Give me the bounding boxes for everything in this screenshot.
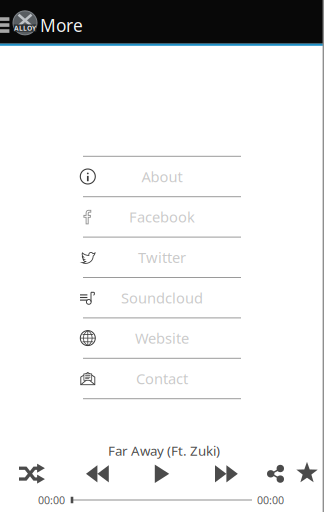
staticText: Twitter (138, 248, 186, 267)
staticText: About (141, 167, 182, 186)
button[interactable]: Contact (83, 359, 241, 398)
button[interactable]: Soundcloud (83, 278, 241, 317)
button[interactable]: Next (215, 465, 238, 483)
staticText: ALLOY (14, 24, 36, 32)
staticText: Contact (136, 369, 188, 388)
button[interactable]: Twitter (83, 238, 241, 277)
staticText: 00:00 (257, 493, 284, 507)
staticText: Far Away (Ft. Zuki) (108, 442, 220, 459)
button[interactable]: Share (266, 464, 285, 483)
staticText: 00:00 (38, 493, 65, 507)
button[interactable]: About (83, 157, 241, 196)
button[interactable]: Previous (86, 465, 109, 483)
staticText: Soundcloud (121, 288, 203, 307)
button[interactable]: Facebook (83, 197, 241, 237)
button[interactable]: Favourite (296, 463, 318, 484)
button[interactable]: Website (83, 318, 241, 358)
staticText: More (40, 14, 83, 37)
button[interactable]: Play (155, 465, 169, 483)
button[interactable]: Menu (0, 0, 13, 43)
staticText: Website (135, 328, 189, 348)
button[interactable]: Shuffle (18, 463, 45, 484)
staticText: Facebook (129, 207, 195, 227)
